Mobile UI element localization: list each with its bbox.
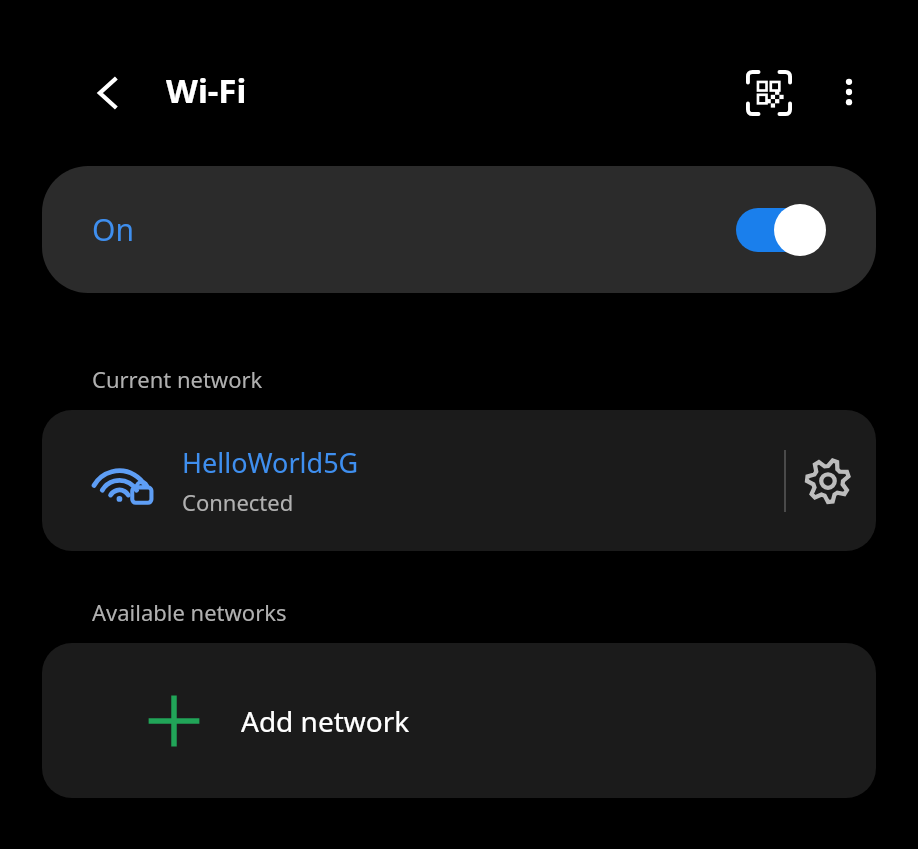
button[interactable]: Add network [42, 643, 876, 798]
staticText: Connected [182, 487, 294, 517]
button[interactable]: HelloWorld5G [42, 410, 876, 551]
staticText: Add network [241, 702, 410, 740]
button[interactable]: Network settings [786, 439, 870, 523]
button[interactable]: Back [78, 63, 138, 123]
button[interactable]: Scan QR code [738, 62, 800, 124]
button[interactable]: On [42, 166, 876, 293]
button[interactable]: More options [819, 62, 879, 122]
staticText: Available networks [92, 597, 287, 627]
staticText: HelloWorld5G [182, 444, 359, 481]
staticText: On [92, 209, 134, 250]
staticText: Current network [92, 364, 263, 394]
staticText: Wi-Fi [166, 68, 247, 113]
